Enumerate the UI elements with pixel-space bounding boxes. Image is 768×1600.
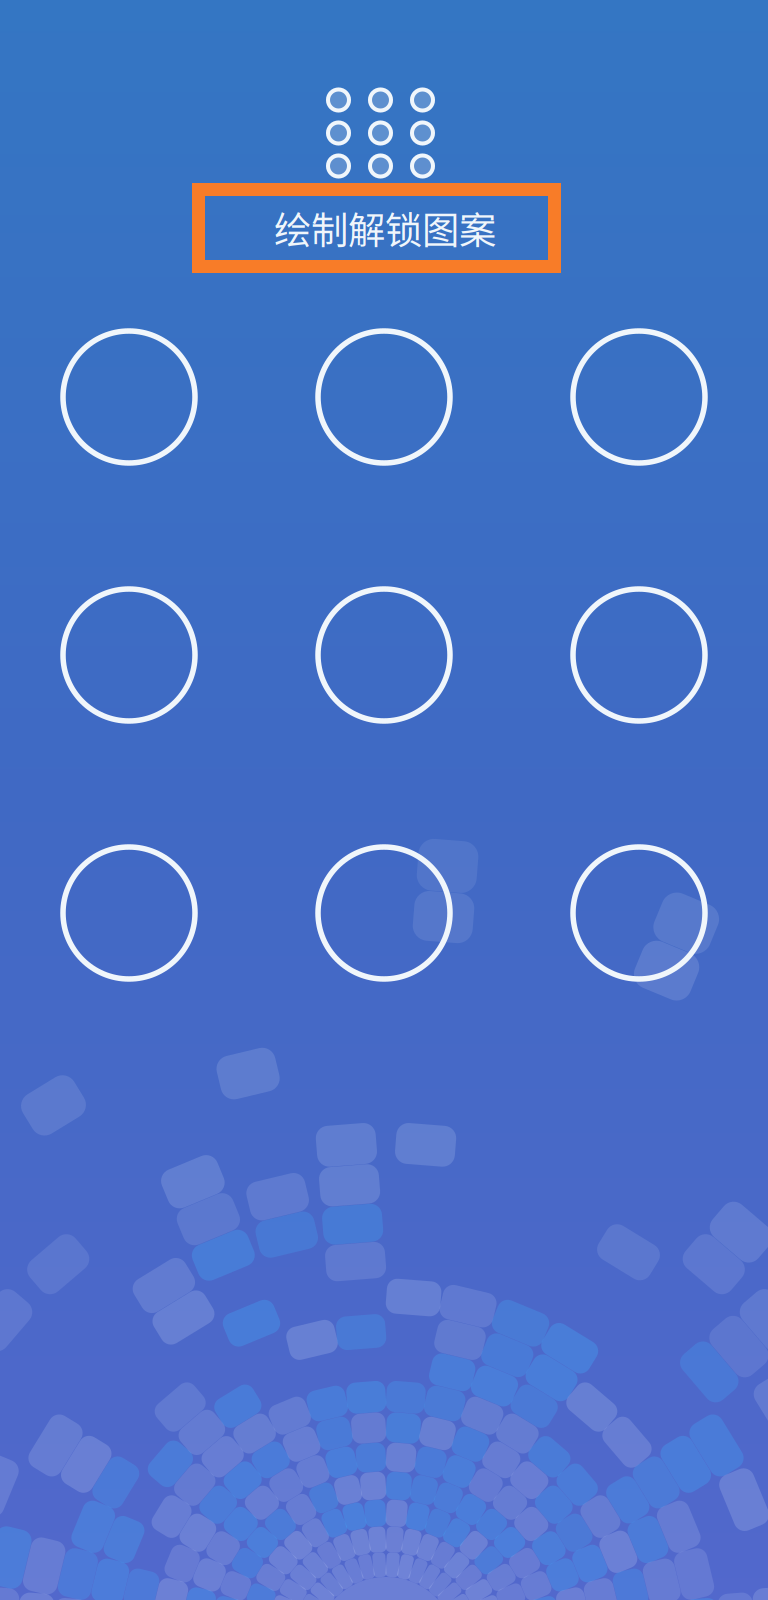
button[interactable]: Pattern dot 9: [573, 847, 705, 979]
staticText: 绘制解锁图案: [274, 201, 496, 255]
button[interactable]: 绘制解锁图案: [192, 183, 561, 273]
button[interactable]: Pattern dot 3: [573, 331, 705, 463]
button[interactable]: Pattern dot 8: [318, 847, 450, 979]
button[interactable]: Pattern dot 6: [573, 589, 705, 721]
button[interactable]: Pattern dot 4: [63, 589, 195, 721]
button[interactable]: Pattern dot 2: [318, 331, 450, 463]
button[interactable]: Pattern dot 1: [63, 331, 195, 463]
button[interactable]: Pattern dot 5: [318, 589, 450, 721]
button[interactable]: Pattern dot 7: [63, 847, 195, 979]
